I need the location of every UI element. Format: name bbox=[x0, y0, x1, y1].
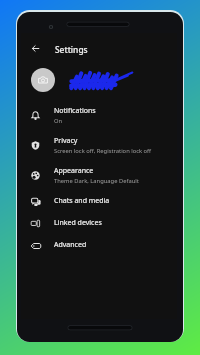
staticText: Chats and media bbox=[54, 196, 110, 206]
button[interactable]: Notifications bbox=[21, 100, 177, 130]
button[interactable]: Privacy bbox=[21, 130, 177, 160]
staticText: Advanced bbox=[54, 240, 87, 250]
button[interactable]: Advanced bbox=[21, 234, 177, 256]
staticText: Linked devices bbox=[54, 218, 102, 228]
staticText: On bbox=[54, 117, 63, 125]
button[interactable]: Back bbox=[29, 42, 41, 54]
staticText: Screen lock off, Registration lock off bbox=[54, 147, 152, 155]
button[interactable] bbox=[21, 65, 177, 94]
staticText: Notifications bbox=[54, 106, 96, 116]
staticText: Appearance bbox=[54, 166, 94, 176]
button[interactable]: Appearance bbox=[21, 160, 177, 190]
staticText: Theme Dark, Language Default bbox=[54, 177, 139, 185]
staticText: Settings bbox=[55, 44, 88, 55]
button[interactable]: Chats and media bbox=[21, 190, 177, 212]
button[interactable]: Linked devices bbox=[21, 212, 177, 234]
staticText: Privacy bbox=[54, 136, 78, 146]
